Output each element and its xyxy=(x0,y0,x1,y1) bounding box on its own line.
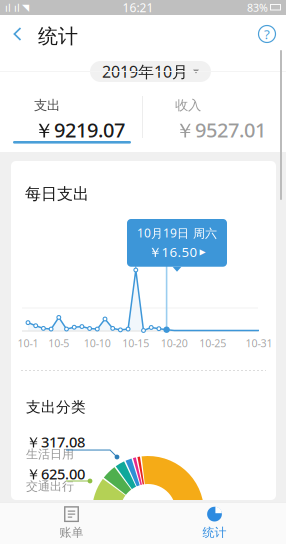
staticText: 收入 xyxy=(175,97,201,113)
button[interactable]: 账单 xyxy=(0,502,143,544)
staticText: ￥317.08 xyxy=(26,432,85,452)
staticText: ▶ xyxy=(199,247,205,256)
staticText: ￥625.00 xyxy=(26,464,85,484)
staticText: 交通出行 xyxy=(26,479,74,494)
staticText: ￥9219.07 xyxy=(34,116,125,143)
staticText: 10-20 xyxy=(161,336,188,350)
button[interactable]: 统计 xyxy=(143,502,286,544)
staticText: 16:21 xyxy=(122,0,153,15)
button[interactable]: 2019年10月 xyxy=(90,61,211,82)
button[interactable]: Help xyxy=(247,17,286,51)
staticText: 每日支出 xyxy=(25,184,89,204)
staticText: 统计 xyxy=(202,525,226,540)
staticText: 支出分类 xyxy=(26,398,86,416)
staticText: ◥ xyxy=(22,2,29,13)
staticText: 10-15 xyxy=(122,336,149,350)
button[interactable]: 支出 xyxy=(34,97,142,133)
staticText: 10-5 xyxy=(48,336,69,350)
staticText: 支出 xyxy=(34,97,60,113)
button[interactable]: 收入 xyxy=(175,97,283,133)
staticText: 生活日用 xyxy=(26,447,74,462)
staticText: 10-1 xyxy=(17,336,38,350)
staticText: ıl ıl xyxy=(5,0,20,15)
staticText: 83% xyxy=(247,0,268,15)
staticText: ￥16.50 xyxy=(148,243,197,261)
staticText: 10-31 xyxy=(245,336,272,350)
staticText: 10月19日 周六 xyxy=(137,225,217,241)
staticText: 10-10 xyxy=(84,336,111,350)
staticText: 账单 xyxy=(59,525,83,540)
staticText: ? xyxy=(264,25,270,43)
staticText: ￥9527.01 xyxy=(175,116,266,143)
staticText: 统计 xyxy=(38,24,78,49)
staticText: 10-25 xyxy=(199,336,226,350)
button[interactable]: Back xyxy=(0,17,35,51)
staticText: 2019年10月 xyxy=(102,61,188,82)
